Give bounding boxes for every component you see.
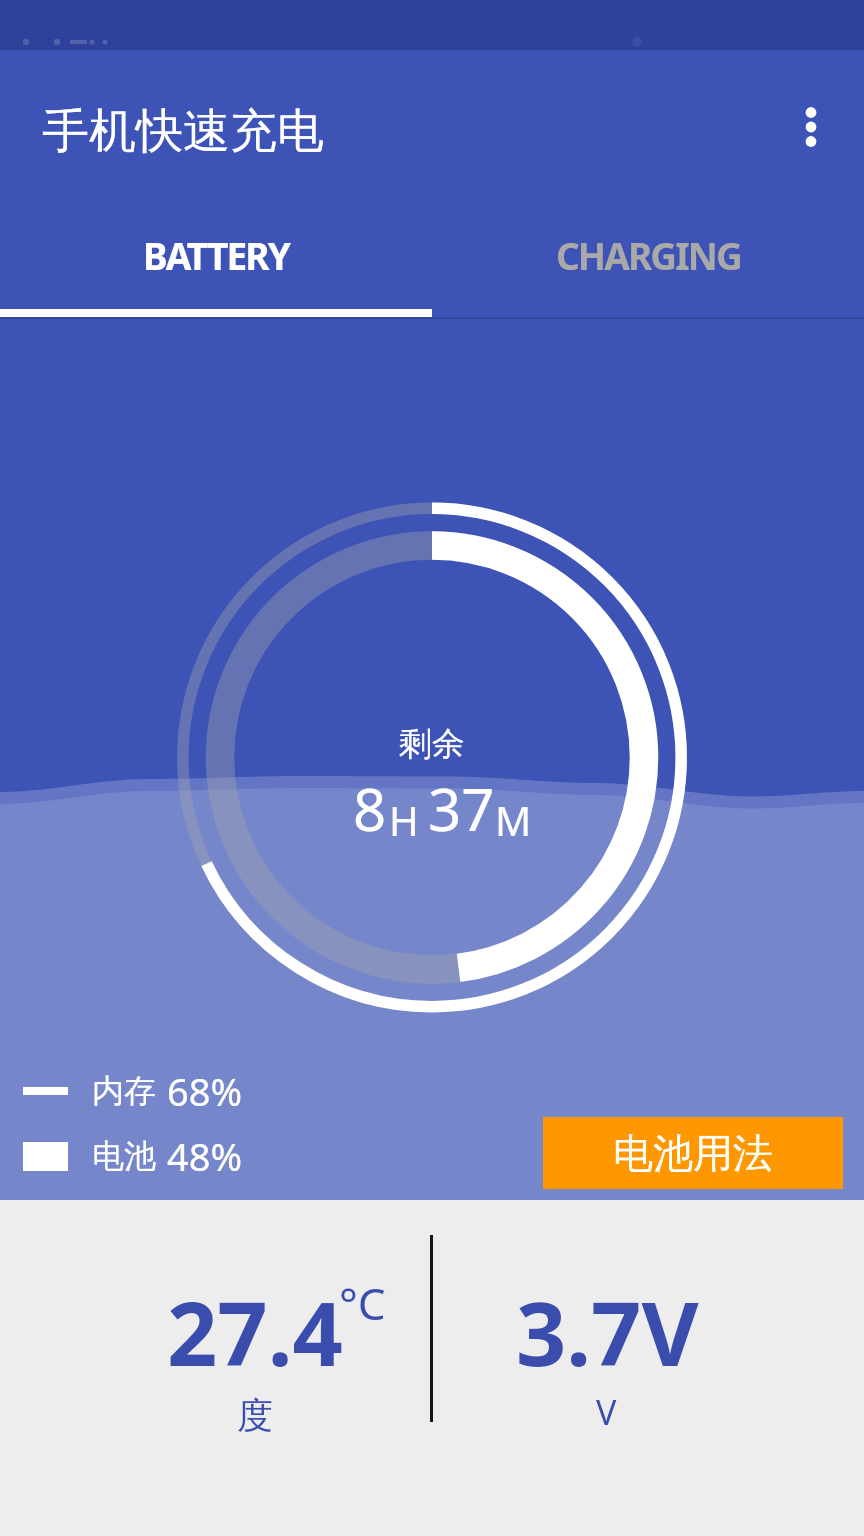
staticText: 电池用法 xyxy=(613,1128,773,1178)
staticText: 内存 xyxy=(92,1071,156,1111)
button[interactable]: More options xyxy=(766,82,856,172)
staticText: M xyxy=(495,793,532,847)
staticText: 68% xyxy=(167,1065,243,1117)
staticText: BATTERY xyxy=(143,230,289,280)
staticText: CHARGING xyxy=(556,230,741,280)
staticText: V xyxy=(596,1389,617,1435)
staticText: 37 xyxy=(428,769,495,848)
staticText: °C xyxy=(339,1273,386,1333)
button[interactable]: CHARGING xyxy=(432,198,864,312)
staticText: 8 xyxy=(353,769,387,848)
staticText: 电池 xyxy=(92,1136,156,1176)
button[interactable]: 电池用法 xyxy=(543,1117,843,1189)
staticText: 3.7V xyxy=(516,1272,699,1392)
staticText: 手机快速充电 xyxy=(42,102,324,161)
button[interactable]: BATTERY xyxy=(0,198,432,312)
staticText: 度 xyxy=(237,1393,273,1438)
staticText: 48% xyxy=(167,1130,243,1182)
staticText: 剩余 xyxy=(399,723,465,765)
staticText: H xyxy=(389,793,419,847)
staticText: 27.4 xyxy=(167,1272,343,1392)
